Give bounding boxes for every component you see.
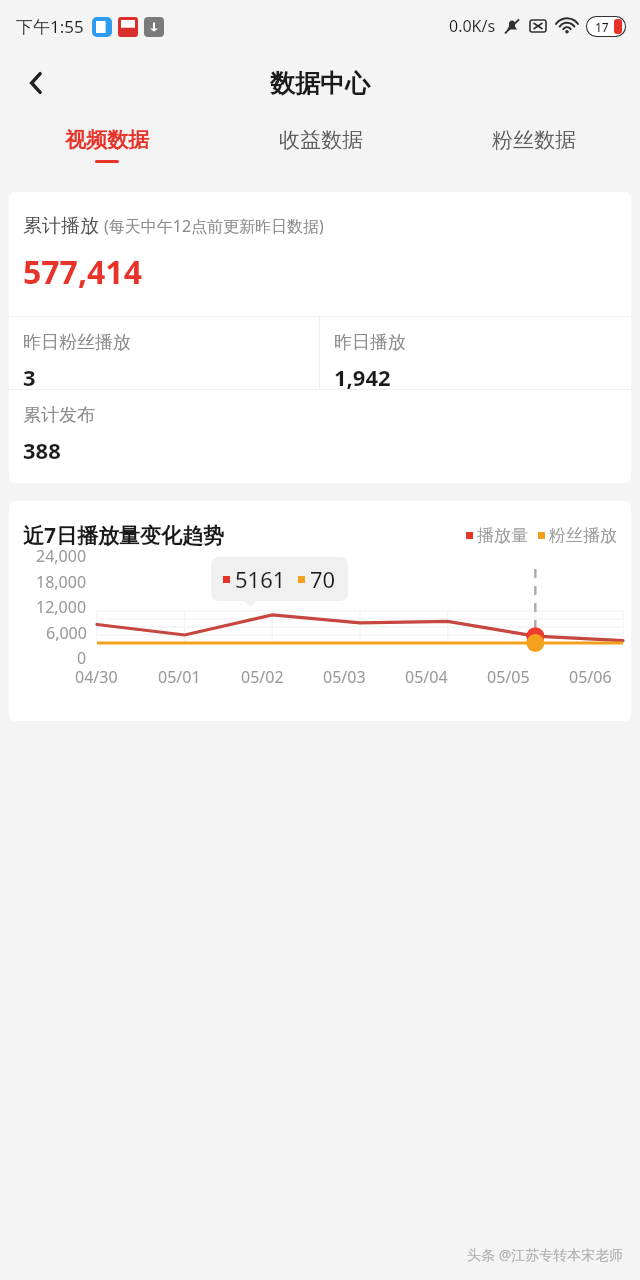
staticText: 累计播放 bbox=[23, 214, 99, 238]
staticText: 17 bbox=[595, 19, 609, 35]
staticText: 12,000 bbox=[36, 596, 87, 618]
staticText: 收益数据 bbox=[279, 127, 363, 153]
staticText: 388 bbox=[23, 435, 61, 465]
staticText: 视频数据 bbox=[65, 127, 149, 153]
staticText: 05/03 bbox=[323, 666, 366, 688]
button[interactable]: 粉丝数据 bbox=[427, 114, 640, 176]
staticText: 05/06 bbox=[569, 666, 612, 688]
staticText: 04/30 bbox=[75, 666, 118, 688]
staticText: 24,000 bbox=[36, 545, 87, 567]
staticText: 05/04 bbox=[405, 666, 448, 688]
staticText: 18,000 bbox=[36, 571, 87, 593]
staticText: 5161 bbox=[235, 564, 286, 594]
staticText: 05/01 bbox=[158, 666, 201, 688]
staticText: 下午1:55 bbox=[16, 15, 84, 38]
staticText: 05/05 bbox=[487, 666, 530, 688]
staticText: 播放量 bbox=[477, 525, 528, 546]
staticText: 0.0K/s bbox=[449, 15, 496, 37]
staticText: 近7日播放量变化趋势 bbox=[23, 521, 225, 550]
staticText: 粉丝播放 bbox=[549, 525, 617, 546]
staticText: 6,000 bbox=[46, 622, 87, 644]
staticText: 头条 @江苏专转本宋老师 bbox=[467, 1245, 624, 1264]
staticText: 数据中心 bbox=[270, 68, 370, 99]
staticText: 累计发布 bbox=[23, 404, 95, 427]
staticText: (每天中午12点前更新昨日数据) bbox=[104, 215, 324, 237]
button[interactable]: 收益数据 bbox=[214, 114, 427, 176]
button[interactable]: Back bbox=[10, 57, 62, 109]
button[interactable]: 视频数据 bbox=[0, 114, 214, 176]
staticText: 粉丝数据 bbox=[492, 127, 576, 153]
staticText: 昨日播放 bbox=[334, 331, 406, 354]
staticText: 1,942 bbox=[334, 362, 391, 389]
staticText: 577,414 bbox=[23, 250, 142, 294]
staticText: 0 bbox=[77, 647, 87, 669]
staticText: 3 bbox=[23, 362, 36, 389]
staticText: 05/02 bbox=[241, 666, 284, 688]
staticText: 70 bbox=[310, 564, 336, 594]
staticText: 昨日粉丝播放 bbox=[23, 331, 131, 354]
